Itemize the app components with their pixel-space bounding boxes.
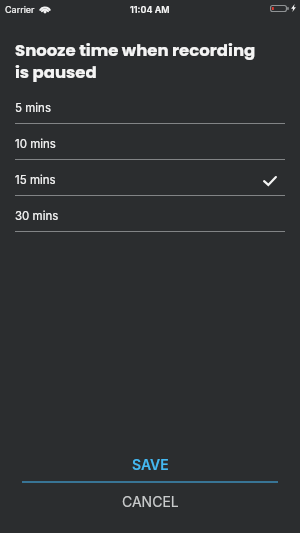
staticText: CANCEL — [122, 493, 179, 510]
other: Selected — [263, 176, 277, 186]
other: Wi-Fi signal — [39, 5, 51, 13]
staticText: 10 mins — [15, 137, 56, 151]
staticText: 30 mins — [15, 209, 59, 223]
button[interactable]: 5 mins — [0, 88, 300, 124]
staticText: Carrier — [5, 4, 35, 15]
button[interactable]: CANCEL — [0, 483, 300, 519]
staticText: 15 mins — [15, 173, 56, 187]
button[interactable]: SAVE — [0, 447, 300, 481]
staticText: Snooze time when recording is paused — [15, 39, 256, 84]
button[interactable]: 15 mins — [0, 160, 300, 196]
button[interactable]: 30 mins — [0, 196, 300, 232]
button[interactable]: 10 mins — [0, 124, 300, 160]
staticText: SAVE — [132, 456, 169, 473]
other: Battery low, charging — [270, 5, 289, 12]
staticText: 5 mins — [15, 101, 51, 115]
staticText: 11:04 AM — [130, 4, 170, 15]
